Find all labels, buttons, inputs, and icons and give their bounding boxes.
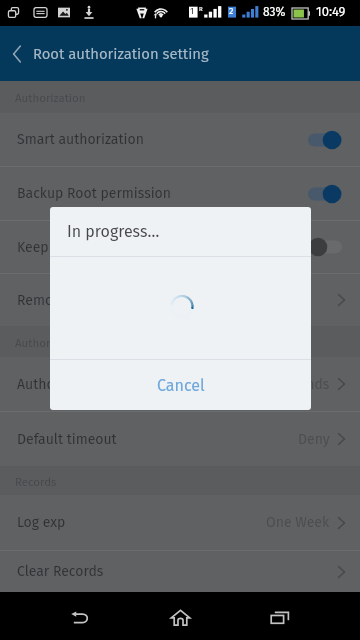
staticText: 30 seconds: [259, 376, 330, 393]
button[interactable]: Smart authorization: [0, 113, 360, 166]
button[interactable]: Recent apps: [250, 592, 310, 640]
staticText: Default timeout: [17, 431, 117, 448]
button[interactable]: Cancel: [50, 360, 311, 410]
button[interactable]: Clear Records: [0, 551, 360, 592]
staticText: One Week: [266, 514, 330, 531]
staticText: Records: [15, 475, 57, 489]
staticText: Deny: [298, 431, 330, 448]
button[interactable]: Back: [50, 592, 110, 640]
staticText: Smart authorization: [17, 131, 144, 148]
button[interactable]: Backup Root permission: [0, 167, 360, 220]
staticText: 1: [190, 6, 194, 17]
staticText: Authorization management: [15, 336, 157, 350]
button[interactable]: Keep authorization: [0, 221, 360, 273]
staticText: Clear Records: [17, 563, 104, 580]
staticText: In progress…: [67, 222, 160, 241]
staticText: Backup Root permission: [17, 185, 171, 202]
staticText: Remove authorization: [17, 292, 157, 309]
staticText: Root authorization setting: [33, 45, 209, 63]
button[interactable]: Navigate up: [0, 26, 34, 81]
staticText: 10:49: [316, 4, 346, 20]
staticText: Authorization: [17, 376, 103, 393]
staticText: R: [199, 5, 203, 12]
button[interactable]: Home: [150, 592, 210, 640]
staticText: Log exp: [17, 514, 66, 531]
staticText: Cancel: [157, 376, 205, 395]
button[interactable]: Log exp: [0, 495, 360, 550]
button[interactable]: Remove authorization: [0, 274, 360, 326]
staticText: Authorization: [15, 91, 86, 105]
button[interactable]: Default timeout: [0, 412, 360, 466]
button[interactable]: Authorization: [0, 357, 360, 411]
staticText: Keep authorization: [17, 239, 138, 256]
staticText: 83%: [263, 5, 286, 19]
staticText: 2: [229, 6, 234, 17]
